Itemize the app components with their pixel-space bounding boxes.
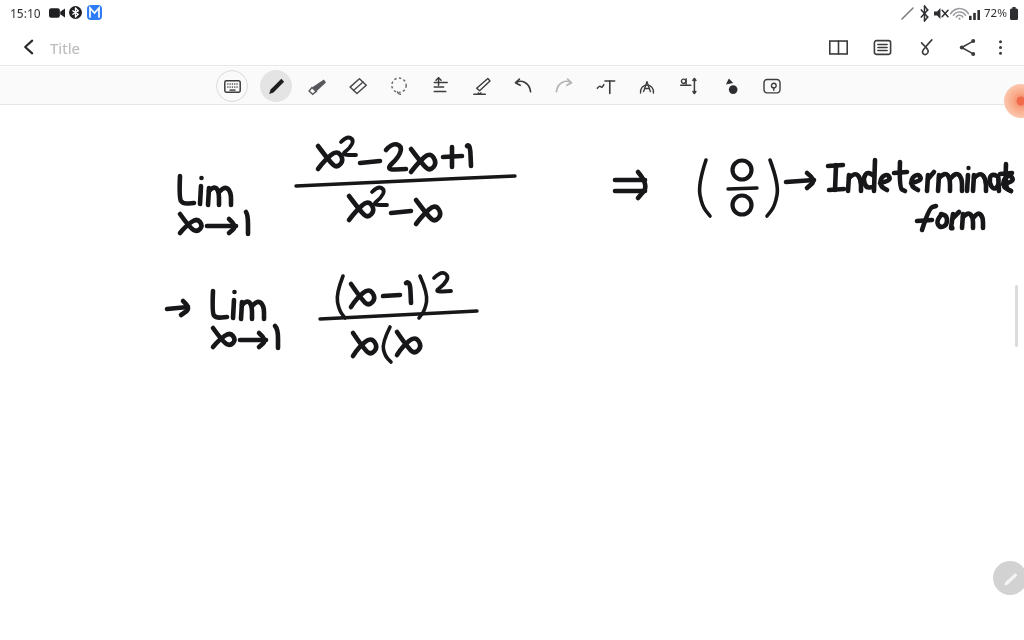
button[interactable]: Lasso select [383, 70, 415, 102]
button[interactable]: Share [951, 31, 983, 63]
button[interactable]: Theme [715, 70, 747, 102]
staticText: 15:10 [10, 5, 41, 21]
button[interactable]: Book [822, 31, 854, 63]
button[interactable]: Undo [507, 70, 539, 102]
button[interactable]: Pen settings [465, 70, 497, 102]
button[interactable]: Shape recognition [631, 70, 663, 102]
button[interactable]: Back [10, 28, 48, 66]
button[interactable]: Eraser [342, 70, 374, 102]
button[interactable]: Keyboard [216, 70, 248, 102]
button[interactable]: Lock [756, 70, 788, 102]
button[interactable]: More options [984, 31, 1016, 63]
button[interactable]: Pen [260, 70, 292, 102]
button[interactable]: Edit [993, 561, 1024, 595]
staticText: 72% [984, 5, 1007, 21]
button[interactable]: Redo [548, 70, 580, 102]
button[interactable]: Align [424, 70, 456, 102]
button[interactable]: Highlighter [301, 70, 333, 102]
button[interactable]: Text recognition [590, 70, 622, 102]
button[interactable]: Notes [866, 31, 898, 63]
button[interactable]: Attach [910, 31, 942, 63]
button[interactable]: Title [50, 38, 80, 58]
button[interactable]: Text size [673, 70, 705, 102]
